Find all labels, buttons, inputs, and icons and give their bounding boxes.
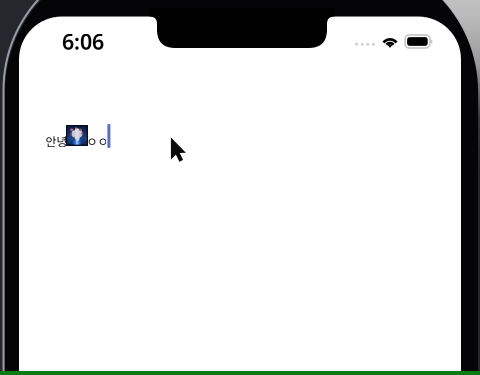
staticText: 6:06 [62,27,104,56]
staticText: 안녕 [46,132,68,150]
button[interactable]: Time 6:06 [19,16,461,375]
staticText: ㅇㅇ [86,132,108,150]
